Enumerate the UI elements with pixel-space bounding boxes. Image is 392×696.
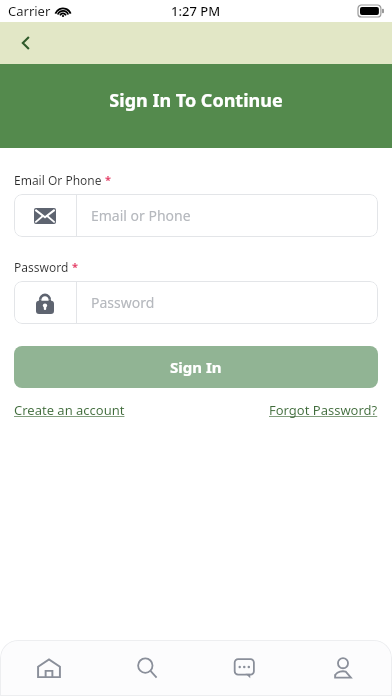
staticText: *: [105, 172, 111, 187]
staticText: *: [72, 259, 78, 274]
staticText: 1:27 PM: [171, 2, 221, 20]
staticText: Email or Phone: [91, 206, 191, 225]
staticText: Create an account: [14, 401, 125, 419]
staticText: Password: [14, 259, 69, 275]
button[interactable]: Password: [14, 281, 378, 324]
button[interactable]: Forgot Password?: [269, 401, 378, 419]
button[interactable]: Messages: [196, 640, 294, 696]
staticText: Email Or Phone: [14, 172, 102, 188]
staticText: Password: [91, 293, 155, 312]
button[interactable]: Create an account: [14, 401, 125, 419]
staticText: Forgot Password?: [269, 401, 378, 419]
button[interactable]: Search: [98, 640, 196, 696]
button[interactable]: Sign In: [14, 346, 378, 388]
button[interactable]: Home: [0, 640, 98, 696]
staticText: Carrier: [8, 2, 51, 20]
button[interactable]: Email or Phone: [14, 194, 378, 237]
staticText: Sign In: [170, 357, 222, 377]
button[interactable]: Back: [6, 23, 46, 63]
staticText: Sign In To Continue: [109, 88, 283, 113]
button[interactable]: Profile: [294, 640, 392, 696]
